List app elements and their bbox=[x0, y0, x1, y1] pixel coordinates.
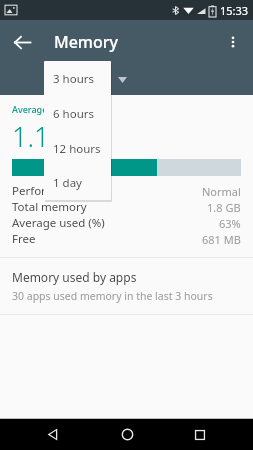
button[interactable]: 12 hours bbox=[44, 131, 111, 166]
staticText: 1 day bbox=[53, 175, 82, 191]
button[interactable]: 3 hours bbox=[44, 61, 111, 96]
button[interactable]: 6 hours bbox=[44, 96, 111, 131]
staticText: 15:33 bbox=[220, 3, 249, 18]
button[interactable]: Home bbox=[107, 419, 147, 450]
staticText: 30 apps used memory in the last 3 hours bbox=[12, 289, 213, 303]
staticText: Performance bbox=[12, 183, 83, 199]
staticText: Total memory bbox=[12, 199, 87, 215]
button[interactable] bbox=[44, 64, 136, 95]
staticText: Memory used by apps bbox=[12, 269, 137, 285]
staticText: Free bbox=[12, 231, 36, 247]
button[interactable]: Performance bbox=[0, 183, 253, 199]
staticText: 681 MB bbox=[202, 232, 241, 247]
button[interactable]: Navigate up bbox=[0, 20, 44, 64]
staticText: GB bbox=[53, 136, 69, 151]
staticText: 12 hours bbox=[53, 141, 101, 157]
staticText: Memory bbox=[54, 31, 119, 53]
button[interactable]: Back bbox=[33, 419, 73, 450]
staticText: 63% bbox=[219, 216, 241, 231]
staticText: Average bbox=[12, 103, 48, 115]
button[interactable]: Average used (%) bbox=[0, 215, 253, 231]
button[interactable]: More options bbox=[213, 22, 253, 62]
staticText: 1.8 GB bbox=[207, 200, 241, 215]
button[interactable]: Memory used by apps bbox=[0, 258, 253, 314]
staticText: 1.1 bbox=[12, 118, 50, 155]
staticText: 6 hours bbox=[53, 106, 94, 122]
staticText: 3 hours bbox=[53, 71, 94, 87]
button[interactable]: 1 day bbox=[44, 166, 111, 200]
button[interactable]: Free bbox=[0, 231, 253, 247]
button[interactable]: Recent apps bbox=[180, 419, 220, 450]
staticText: Average used (%) bbox=[12, 215, 105, 231]
button[interactable]: Total memory bbox=[0, 199, 253, 215]
staticText: Normal bbox=[202, 184, 241, 199]
